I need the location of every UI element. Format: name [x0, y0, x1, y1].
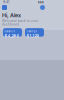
staticText: $4,280 — [4, 33, 19, 38]
staticText: Balance — [4, 30, 15, 33]
staticText: $1,120 — [26, 33, 39, 38]
staticText: ▮▮▮ — [38, 0, 44, 4]
staticText: 9:41 — [3, 0, 9, 4]
staticText: Savings — [26, 30, 36, 33]
staticText: Hi, Alex — [2, 12, 21, 18]
staticText: Welcome back to your dashboard — [2, 19, 38, 26]
